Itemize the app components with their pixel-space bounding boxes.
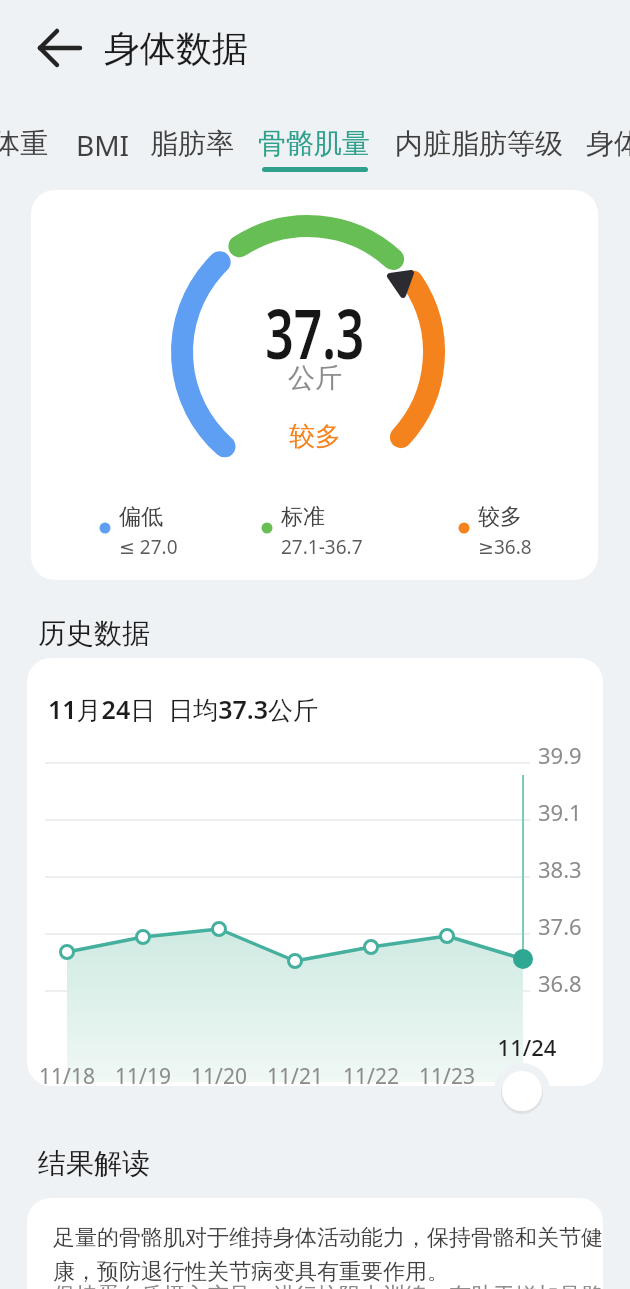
staticText: 11/21 xyxy=(257,1062,333,1086)
staticText: 11/19 xyxy=(105,1062,181,1086)
staticText: 11/23 xyxy=(409,1062,485,1086)
staticText: ≤ 27.0 xyxy=(119,534,178,560)
staticText: 38.3 xyxy=(538,854,582,884)
button[interactable]: 11月24日 日均37.3公斤 xyxy=(27,658,603,1086)
staticText: 体重 xyxy=(0,126,48,161)
staticText: 身体数据 xyxy=(104,26,248,71)
staticText: 11/18 xyxy=(29,1062,105,1086)
button[interactable]: 37.3 xyxy=(31,190,598,580)
staticText: 足量的骨骼肌对于维持身体活动能力，保持骨骼和关节健康，预防退行性关节病变具有重要… xyxy=(53,1224,603,1289)
staticText: 身体年龄 xyxy=(586,126,630,161)
staticText: 骨骼肌量 xyxy=(258,126,370,161)
staticText: 内脏脂肪等级 xyxy=(395,126,563,161)
staticText: 较多 xyxy=(289,420,341,453)
button[interactable]: BMI xyxy=(60,118,190,166)
staticText: 脂肪率 xyxy=(150,126,234,161)
staticText: 保持蛋白质摄入充足，进行抗阻力训练，有助于增加骨骼肌 xyxy=(53,1282,603,1289)
staticText: 公斤 xyxy=(288,361,342,395)
staticText: 11/24 xyxy=(489,1032,565,1062)
button[interactable] xyxy=(30,24,78,72)
button[interactable]: 内脏脂肪等级 xyxy=(385,118,565,166)
staticText: 结果解读 xyxy=(38,1146,150,1181)
staticText: 39.9 xyxy=(538,740,582,770)
staticText: 标准 xyxy=(281,503,325,531)
staticText: 11/20 xyxy=(181,1062,257,1086)
button[interactable]: 身体年龄 xyxy=(576,118,630,166)
staticText: ≥36.8 xyxy=(478,534,532,560)
staticText: 36.8 xyxy=(538,968,582,998)
staticText: 11/22 xyxy=(333,1062,409,1086)
staticText: 27.1-36.7 xyxy=(281,534,363,560)
staticText: 偏低 xyxy=(119,503,163,531)
button[interactable] xyxy=(480,1050,570,1140)
button[interactable]: 骨骼肌量 xyxy=(248,118,378,174)
staticText: BMI xyxy=(76,126,130,164)
staticText: 11月24日 日均37.3公斤 xyxy=(48,692,319,726)
button[interactable]: 脂肪率 xyxy=(140,118,244,166)
button[interactable]: 足量的骨骼肌对于维持身体活动能力，保持骨骼和关节健康，预防退行性关节病变具有重要… xyxy=(27,1198,603,1289)
staticText: 历史数据 xyxy=(38,616,150,651)
staticText: 较多 xyxy=(478,503,522,531)
staticText: 37.3 xyxy=(265,286,365,379)
staticText: 37.6 xyxy=(538,911,582,941)
staticText: 39.1 xyxy=(538,797,582,827)
